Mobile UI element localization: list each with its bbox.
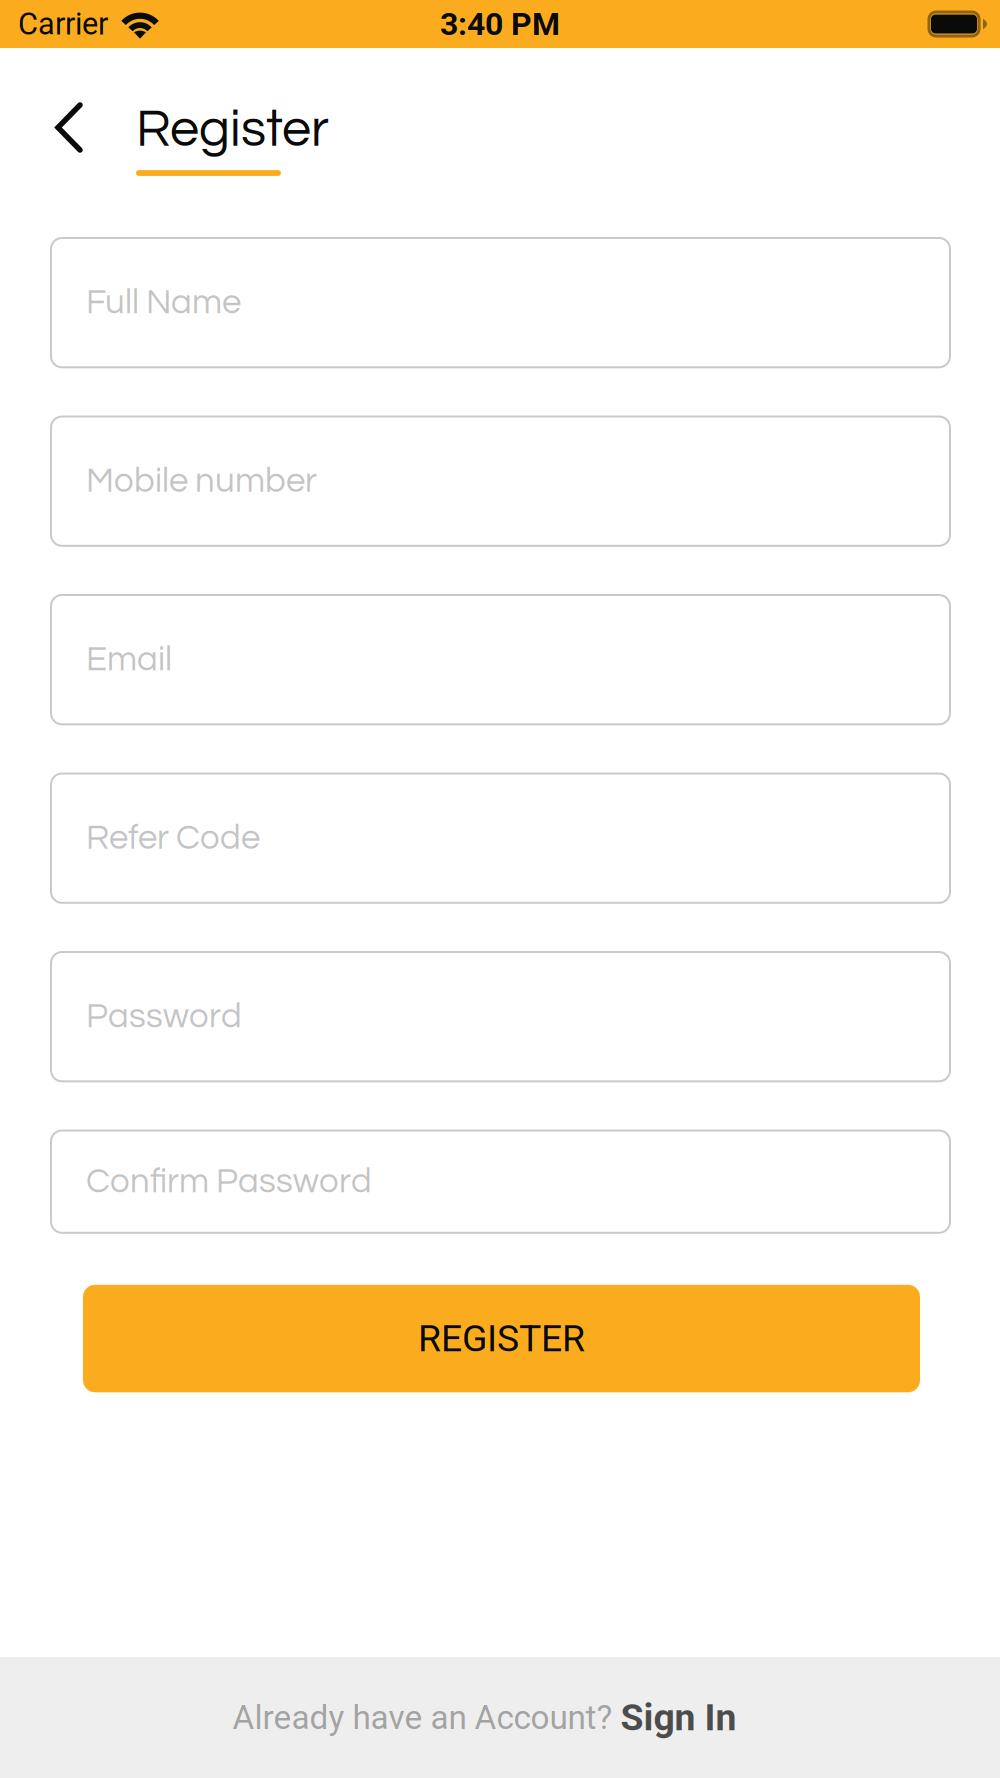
staticText: Already have an Account? (232, 1698, 620, 1737)
staticText: 3:40 PM (440, 5, 560, 43)
staticText: Mobile number (86, 463, 317, 499)
staticText: Password (86, 999, 242, 1034)
button[interactable]: Back (0, 48, 133, 177)
button[interactable]: Already have an Account? (0, 1657, 1000, 1778)
staticText: REGISTER (418, 1317, 585, 1360)
staticText: Full Name (86, 285, 241, 320)
staticText: Carrier (18, 6, 108, 42)
staticText: Register (136, 103, 329, 157)
staticText: Sign In (620, 1696, 736, 1739)
staticText: Refer Code (86, 820, 260, 856)
button[interactable]: REGISTER (83, 1285, 920, 1392)
staticText: Confirm Password (86, 1164, 372, 1199)
staticText: Email (86, 642, 172, 677)
